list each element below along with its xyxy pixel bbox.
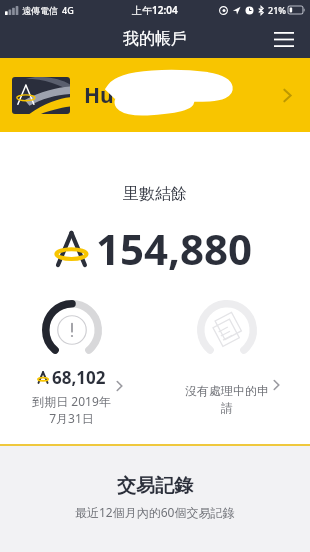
button[interactable]: Menu — [266, 21, 302, 57]
button[interactable]: Hu — [0, 58, 310, 132]
staticText: 68,102 — [52, 366, 106, 389]
button[interactable]: 68,102 — [30, 299, 126, 426]
staticText: 最近12個月內的60個交易記錄 — [75, 504, 235, 520]
staticText: 21% — [268, 4, 286, 16]
staticText: 里數結餘 — [123, 184, 187, 204]
button[interactable]: 沒有處理中的申 請 — [183, 299, 283, 415]
staticText: Hu — [84, 81, 114, 110]
staticText: 到期日 2019年 7月31日 — [32, 393, 111, 426]
staticText: 遠傳電信 — [22, 5, 58, 16]
staticText: 4G — [62, 4, 74, 16]
staticText: 上午12:04 — [132, 3, 178, 17]
staticText: 沒有處理中的申 請 — [185, 383, 269, 415]
staticText: 交易記錄 — [117, 474, 193, 498]
staticText: 154,880 — [96, 220, 253, 277]
staticText: 我的帳戶 — [123, 29, 187, 49]
